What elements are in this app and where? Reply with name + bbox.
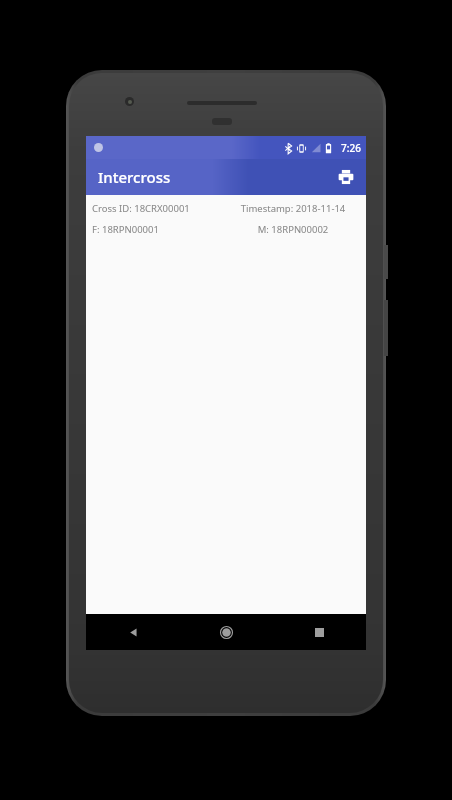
button[interactable]: Cross ID: 18CRX00001 [86,202,366,215]
staticText: Cross ID: 18CRX00001 [92,202,226,215]
staticText: 7:26 [341,141,361,155]
button[interactable]: F: 18RPN00001 [86,223,366,236]
staticText: Timestamp: 2018-11-14 [226,202,360,215]
button[interactable]: Back [86,614,180,650]
staticText: M: 18RPN00002 [226,223,360,236]
staticText: Intercross [98,167,171,187]
staticText: F: 18RPN00001 [92,223,226,236]
button[interactable]: Recent apps [273,614,366,650]
button[interactable]: Print [330,161,362,193]
button[interactable]: Home [180,614,273,650]
